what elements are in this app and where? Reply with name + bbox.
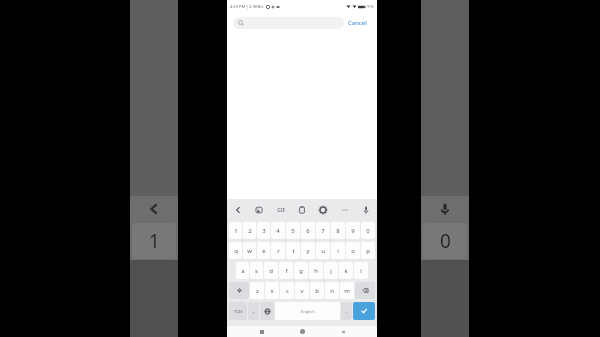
- button[interactable]: u: [316, 242, 330, 259]
- staticText: z: [256, 287, 259, 295]
- staticText: l: [360, 267, 362, 275]
- button[interactable]: Clipboard: [296, 204, 308, 216]
- staticText: 3: [262, 227, 266, 235]
- button[interactable]: f: [279, 262, 293, 279]
- other: Search: [238, 20, 244, 26]
- button[interactable]: q: [229, 242, 242, 259]
- button[interactable]: a: [236, 262, 249, 279]
- button[interactable]: .: [341, 302, 352, 320]
- staticText: English: [301, 309, 315, 314]
- button[interactable]: Home: [297, 326, 308, 337]
- button[interactable]: English: [275, 302, 340, 320]
- button[interactable]: ,: [248, 302, 259, 320]
- button[interactable]: j: [324, 262, 338, 279]
- button[interactable]: g: [294, 262, 308, 279]
- button[interactable]: Back: [232, 204, 244, 216]
- button[interactable]: i: [331, 242, 345, 259]
- button[interactable]: h: [309, 262, 323, 279]
- staticText: k: [344, 267, 348, 275]
- staticText: r: [277, 247, 280, 255]
- button[interactable]: More options: [339, 204, 351, 216]
- staticText: 7: [321, 227, 325, 235]
- button[interactable]: Search: [233, 17, 344, 29]
- button[interactable]: y: [301, 242, 315, 259]
- staticText: s: [255, 267, 258, 275]
- button[interactable]: s: [250, 262, 263, 279]
- staticText: ,: [253, 307, 255, 315]
- staticText: w: [247, 247, 252, 255]
- staticText: b: [315, 287, 319, 295]
- button[interactable]: w: [243, 242, 256, 259]
- staticText: g: [299, 267, 303, 275]
- button[interactable]: t: [286, 242, 300, 259]
- button[interactable]: l: [354, 262, 368, 279]
- button[interactable]: v: [295, 282, 309, 299]
- staticText: j: [330, 267, 332, 275]
- button[interactable]: Voice input: [360, 204, 372, 216]
- button[interactable]: z: [250, 282, 264, 299]
- staticText: i: [337, 247, 339, 255]
- button[interactable]: c: [280, 282, 294, 299]
- button[interactable]: Enter: [353, 302, 375, 320]
- staticText: x: [270, 287, 274, 295]
- staticText: d: [269, 267, 273, 275]
- staticText: f: [285, 267, 288, 275]
- staticText: 4:39 PM | 2.9KB/s: [230, 4, 264, 9]
- button[interactable]: GIF: [275, 204, 287, 216]
- staticText: 6: [306, 227, 310, 235]
- button[interactable]: Settings: [317, 204, 329, 216]
- staticText: ?123: [234, 309, 243, 314]
- button[interactable]: 3: [257, 222, 270, 239]
- button[interactable]: ?123: [229, 302, 247, 320]
- staticText: 1: [149, 228, 160, 254]
- button[interactable]: Change language: [260, 302, 274, 320]
- staticText: t: [292, 247, 295, 255]
- button[interactable]: b: [310, 282, 324, 299]
- button[interactable]: Backspace: [355, 282, 375, 299]
- button[interactable]: m: [340, 282, 354, 299]
- staticText: 0: [440, 228, 451, 254]
- staticText: p: [366, 247, 370, 255]
- staticText: 91%: [367, 4, 374, 9]
- button[interactable]: Cancel: [344, 16, 371, 30]
- button[interactable]: 2: [243, 222, 256, 239]
- staticText: 0: [366, 227, 370, 235]
- button[interactable]: n: [325, 282, 339, 299]
- staticText: m: [344, 287, 350, 295]
- staticText: 4: [276, 227, 280, 235]
- staticText: q: [234, 247, 238, 255]
- button[interactable]: x: [265, 282, 279, 299]
- staticText: n: [330, 287, 334, 295]
- button[interactable]: Back: [337, 326, 348, 337]
- button[interactable]: 4: [271, 222, 285, 239]
- staticText: u: [321, 247, 325, 255]
- button[interactable]: k: [339, 262, 353, 279]
- button[interactable]: Shift: [229, 282, 249, 299]
- staticText: 8: [336, 227, 340, 235]
- button[interactable]: 8: [331, 222, 345, 239]
- button[interactable]: 5: [286, 222, 300, 239]
- button[interactable]: Stickers: [253, 204, 265, 216]
- button[interactable]: p: [361, 242, 375, 259]
- button[interactable]: 9: [346, 222, 360, 239]
- staticText: 9: [351, 227, 355, 235]
- button[interactable]: 7: [316, 222, 330, 239]
- staticText: a: [241, 267, 245, 275]
- staticText: v: [300, 287, 304, 295]
- button[interactable]: Recent apps: [256, 326, 267, 337]
- button[interactable]: e: [257, 242, 270, 259]
- staticText: c: [286, 287, 289, 295]
- staticText: .: [346, 307, 348, 315]
- button[interactable]: d: [264, 262, 278, 279]
- button[interactable]: 0: [361, 222, 375, 239]
- staticText: GIF: [277, 207, 286, 214]
- staticText: h: [314, 267, 318, 275]
- button[interactable]: 1: [229, 222, 242, 239]
- button[interactable]: o: [346, 242, 360, 259]
- button[interactable]: 6: [301, 222, 315, 239]
- staticText: 1: [234, 227, 238, 235]
- staticText: 5: [291, 227, 295, 235]
- staticText: y: [306, 247, 310, 255]
- button[interactable]: r: [271, 242, 285, 259]
- staticText: o: [351, 247, 355, 255]
